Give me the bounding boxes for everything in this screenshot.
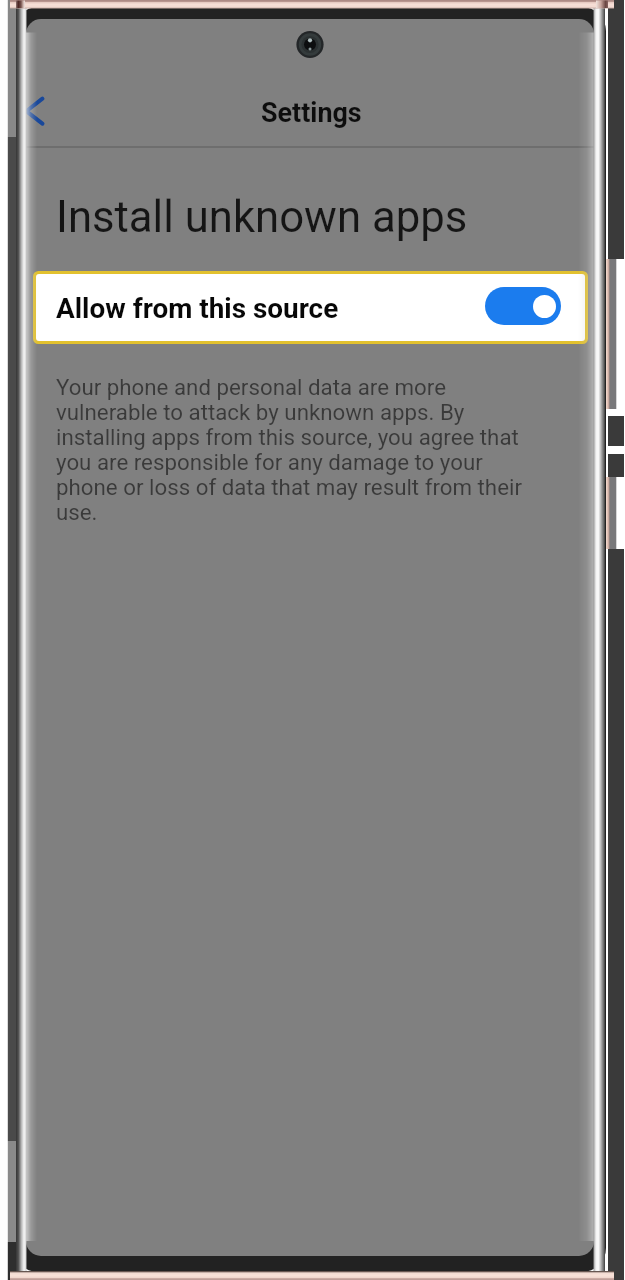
button[interactable]: Back [26,85,68,139]
staticText: Your phone and personal data are more vu… [56,374,526,526]
staticText: Settings [261,97,362,129]
staticText: Install unknown apps [56,191,468,242]
button[interactable]: Allow from this source [36,274,585,341]
staticText: Allow from this source [56,292,339,325]
